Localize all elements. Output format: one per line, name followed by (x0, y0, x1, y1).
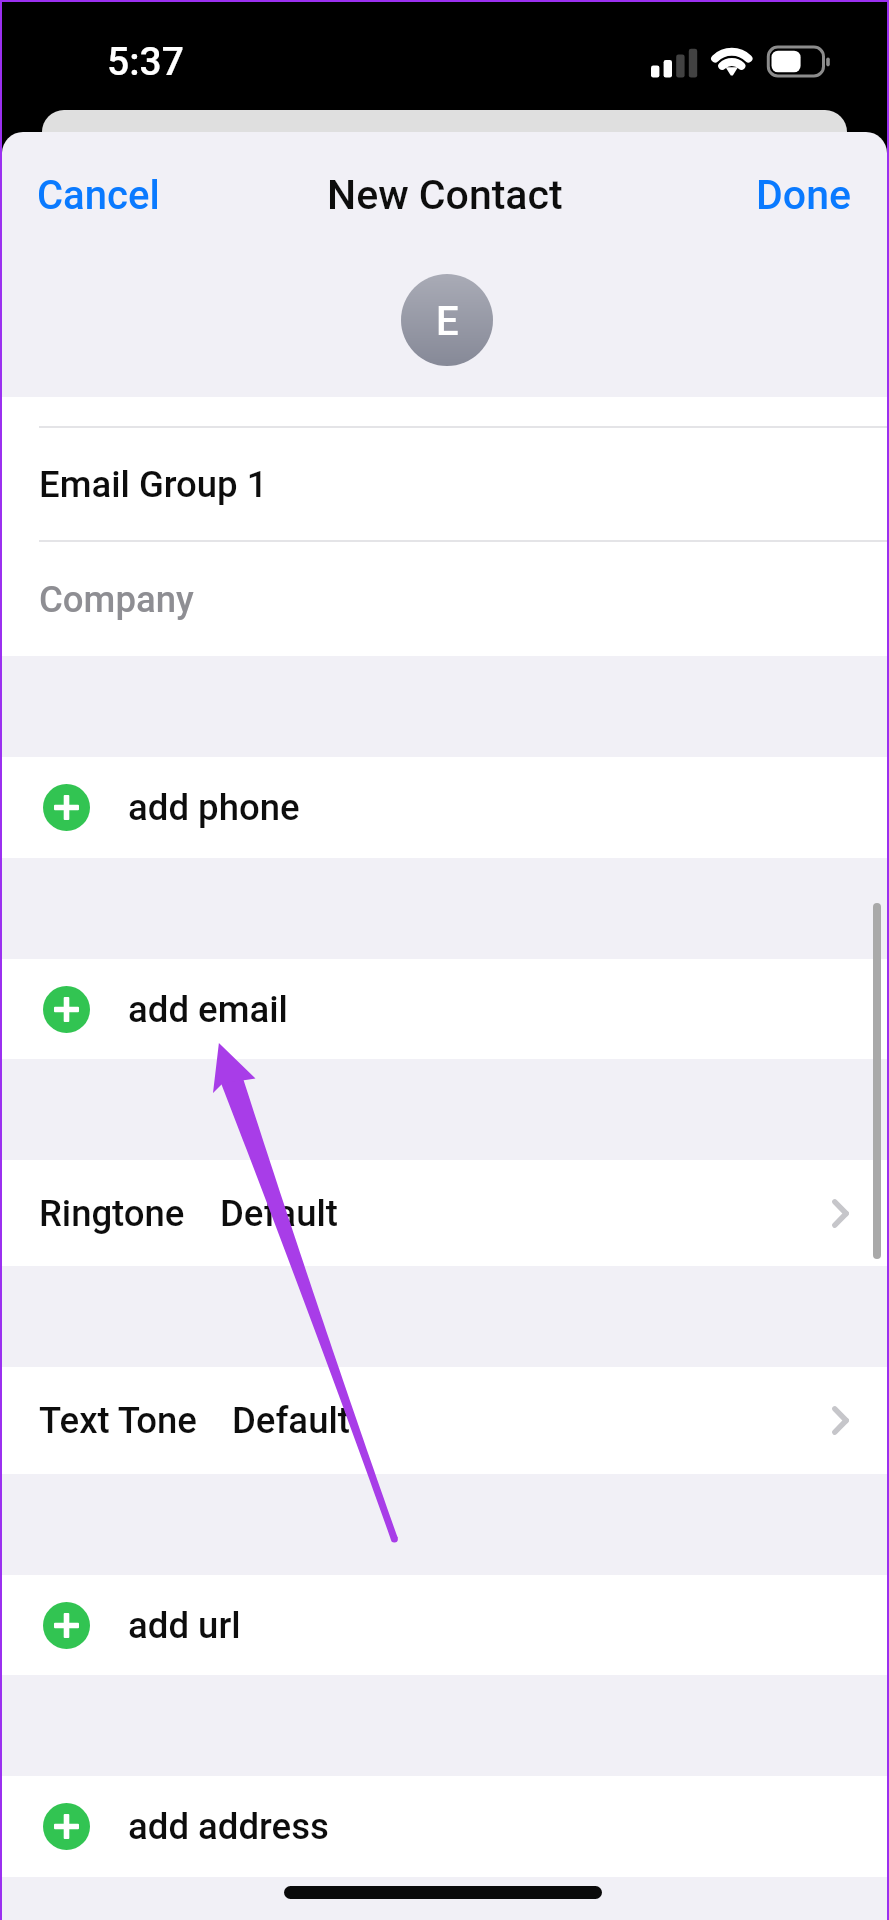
button[interactable]: add email (2, 959, 887, 1059)
staticText: add url (128, 1604, 241, 1647)
button[interactable]: Done (726, 147, 887, 243)
staticText: add email (128, 988, 288, 1031)
button[interactable]: Add photo (401, 274, 493, 366)
button[interactable]: add phone (2, 757, 887, 858)
staticText: New Contact (327, 171, 563, 219)
button[interactable]: Ringtone (2, 1160, 887, 1266)
staticText: Cancel (37, 172, 160, 219)
staticText: E (436, 298, 459, 345)
button[interactable]: add address (2, 1776, 887, 1877)
staticText: Default (220, 1192, 338, 1235)
button[interactable]: Company (2, 542, 887, 656)
staticText: add phone (128, 786, 300, 829)
button[interactable]: Text Tone (2, 1367, 887, 1474)
staticText: 5:37 (107, 39, 184, 85)
staticText: Done (756, 171, 851, 219)
button[interactable]: Email Group 1 (2, 428, 887, 540)
button[interactable]: Cancel (2, 148, 190, 243)
staticText: Email Group 1 (39, 463, 268, 506)
staticText: Ringtone (39, 1192, 185, 1235)
staticText: add address (128, 1805, 329, 1848)
staticText: Text Tone (39, 1399, 197, 1442)
button[interactable]: add url (2, 1575, 887, 1675)
staticText: Company (39, 578, 194, 621)
staticText: Default (232, 1399, 350, 1442)
